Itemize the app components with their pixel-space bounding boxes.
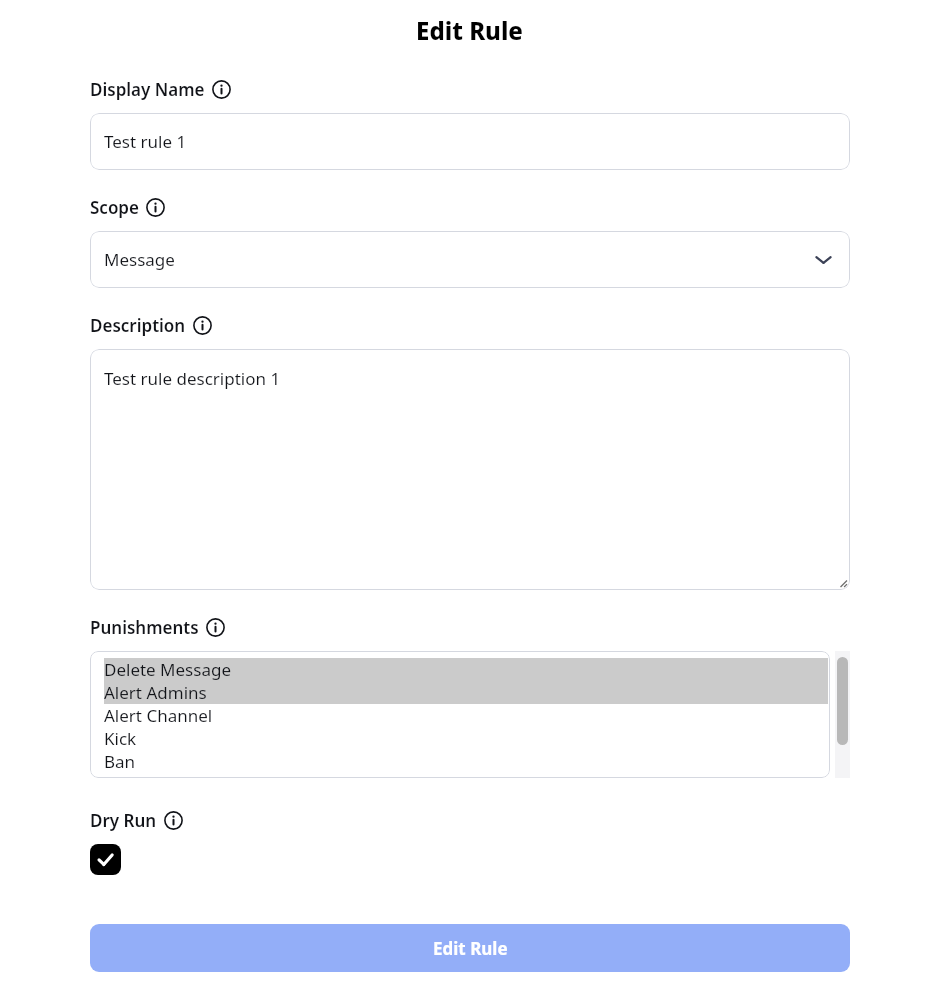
staticText: Scope [90, 196, 139, 219]
button[interactable]: Message [90, 231, 850, 288]
staticText: Message [104, 248, 175, 271]
staticText: Alert Admins [104, 681, 207, 704]
button[interactable]: Dry Run checkbox, checked [90, 844, 121, 875]
button[interactable]: Alert Channel [104, 704, 828, 727]
staticText: Edit Rule [433, 937, 508, 960]
staticText: Punishments [90, 616, 199, 639]
button[interactable]: Delete Message [104, 658, 828, 681]
button[interactable]: Test rule 1 [90, 113, 850, 170]
staticText: Dry Run [90, 809, 157, 832]
button[interactable]: Description info [193, 316, 212, 335]
button[interactable]: Display Name info [212, 80, 231, 99]
button[interactable]: Dry Run info [164, 811, 183, 830]
button[interactable]: Kick [104, 727, 828, 750]
staticText: Alert Channel [104, 704, 213, 727]
staticText: Ban [104, 750, 136, 773]
staticText: Edit Rule [0, 14, 939, 47]
staticText: Display Name [90, 78, 205, 101]
staticText: Test rule 1 [104, 130, 187, 153]
staticText: Test rule description 1 [104, 367, 281, 390]
button[interactable]: Edit Rule [90, 924, 850, 972]
staticText: Description [90, 314, 186, 337]
button[interactable]: Scope info [146, 198, 165, 217]
button[interactable]: Punishments info [206, 618, 225, 637]
staticText: Kick [104, 727, 137, 750]
button[interactable]: Test rule description 1 [90, 349, 850, 590]
staticText: Delete Message [104, 658, 231, 681]
button[interactable]: Delete Message [90, 651, 830, 778]
button[interactable]: Alert Admins [104, 681, 828, 704]
button[interactable]: Ban [104, 750, 828, 773]
